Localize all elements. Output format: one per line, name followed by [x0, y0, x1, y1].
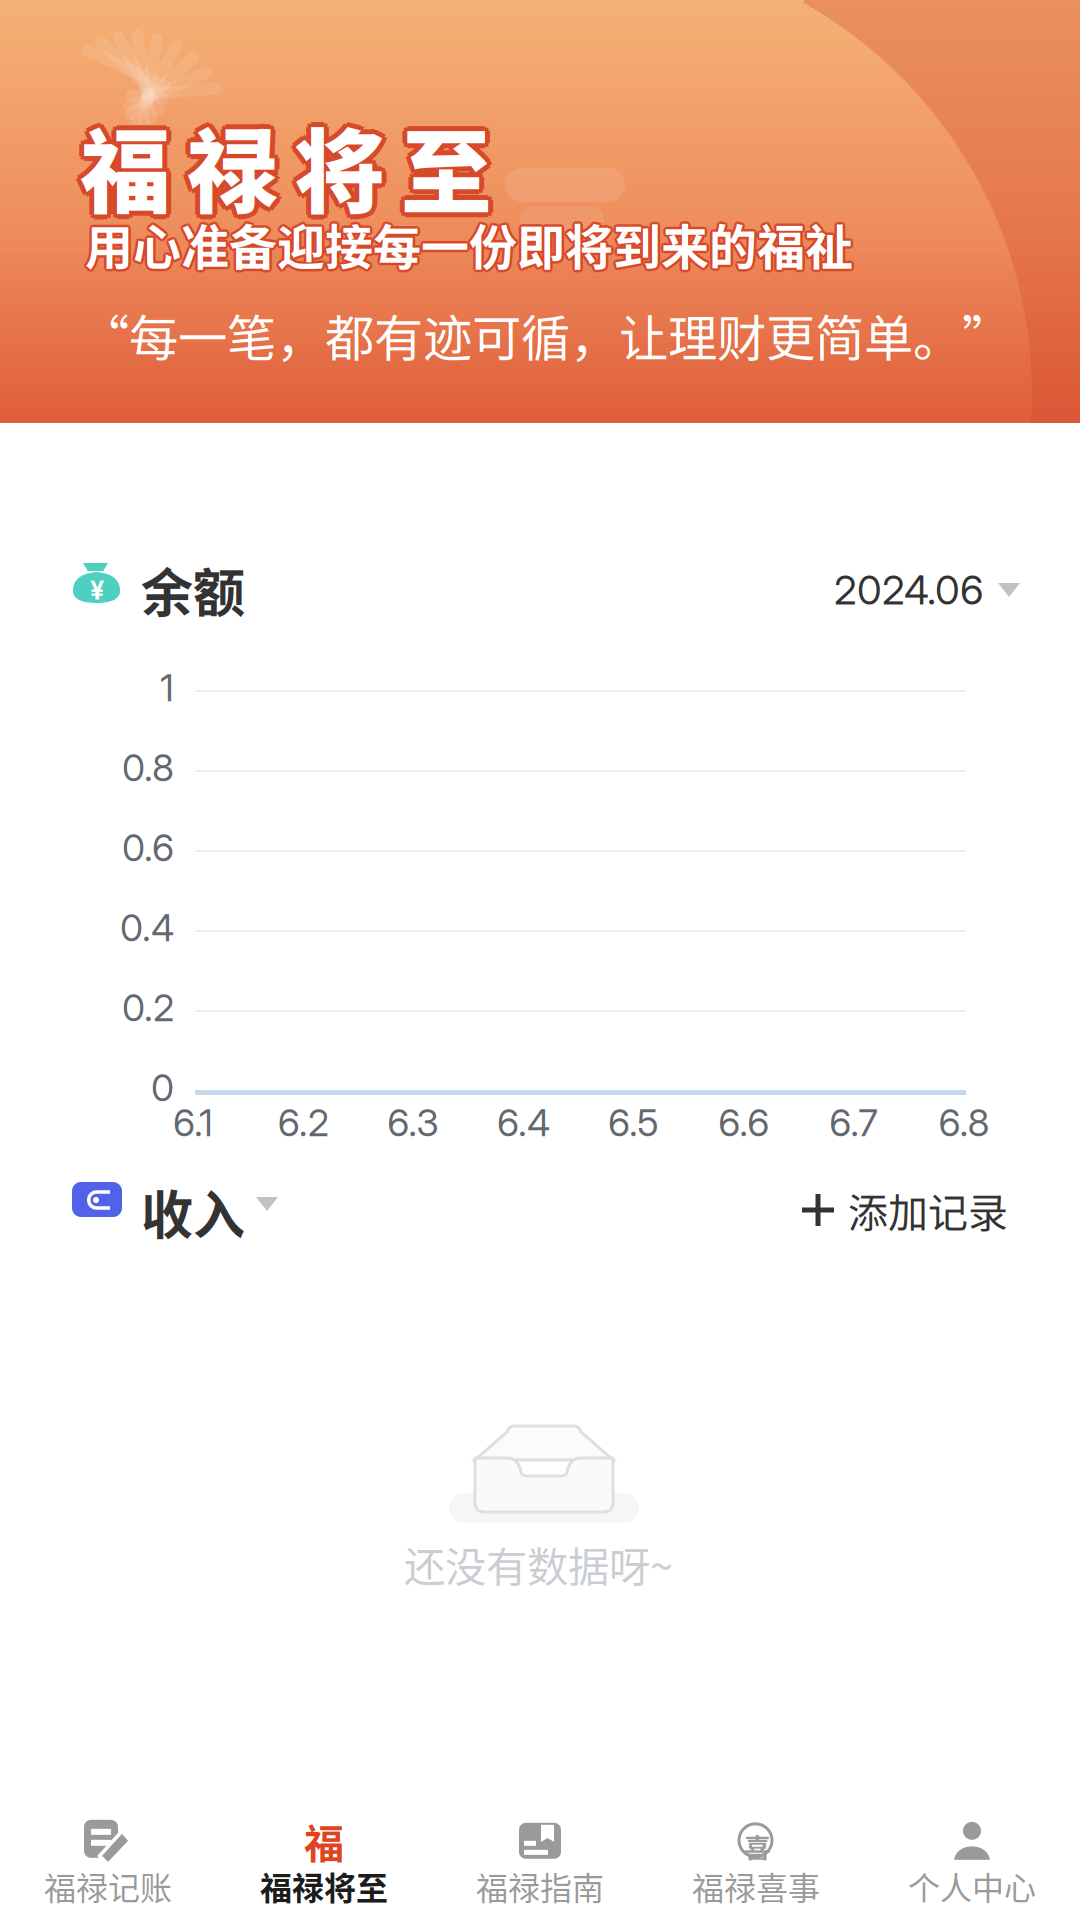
button[interactable]: 福: [216, 1802, 432, 1912]
staticText: 福禄喜事: [692, 1863, 820, 1909]
staticText: 福禄指南: [476, 1863, 604, 1909]
staticText: 福禄将至: [80, 100, 492, 231]
staticText: 用心准备迎接每一份即将到来的福祉: [87, 209, 855, 278]
staticText: 6.8: [938, 1100, 989, 1145]
staticText: 6.1: [173, 1100, 213, 1145]
staticText: 福禄记账: [44, 1863, 172, 1909]
staticText: 0: [151, 1065, 174, 1110]
staticText: 0.2: [122, 985, 174, 1030]
staticText: 用心准备迎接每一份即将到来的福祉: [87, 211, 855, 280]
staticText: 添加记录: [848, 1181, 1008, 1239]
staticText: 用心准备迎接每一份即将到来的福祉: [87, 207, 855, 277]
staticText: 福禄将至: [260, 1863, 388, 1909]
staticText: 还没有数据呀~: [404, 1534, 673, 1594]
staticText: 福禄将至: [85, 100, 497, 231]
staticText: 用心准备迎接每一份即将到来的福祉: [83, 211, 851, 280]
button[interactable]: 喜: [648, 1802, 864, 1912]
button[interactable]: 添加记录: [778, 1186, 1008, 1234]
button[interactable]: 个人中心: [864, 1802, 1080, 1912]
button[interactable]: 福禄指南: [432, 1802, 648, 1912]
staticText: 喜: [744, 1827, 771, 1865]
staticText: 福: [304, 1812, 344, 1870]
staticText: 6.2: [278, 1100, 329, 1145]
staticText: 用心准备迎接每一份即将到来的福祉: [85, 209, 853, 278]
staticText: 福禄将至: [83, 103, 495, 235]
staticText: 收入: [141, 1174, 245, 1249]
staticText: 福禄将至: [83, 96, 495, 228]
staticText: 福禄将至: [80, 105, 492, 236]
staticText: 余额: [141, 552, 245, 627]
staticText: 福禄将至: [76, 103, 488, 235]
staticText: 福禄将至: [76, 96, 488, 228]
staticText: 6.6: [718, 1100, 769, 1145]
staticText: 用心准备迎接每一份即将到来的福祉: [85, 211, 853, 281]
staticText: 用心准备迎接每一份即将到来的福祉: [83, 207, 851, 277]
button[interactable]: 2024.06: [800, 566, 1020, 614]
staticText: ¥: [90, 575, 104, 606]
staticText: 用心准备迎接每一份即将到来的福祉: [82, 209, 850, 278]
staticText: 0.8: [122, 745, 174, 790]
staticText: 6.4: [497, 1100, 550, 1145]
staticText: 1: [160, 665, 174, 710]
staticText: 0.6: [122, 825, 174, 870]
staticText: 0.4: [120, 905, 174, 950]
staticText: 用心准备迎接每一份即将到来的福祉: [85, 206, 853, 276]
staticText: “每一笔，都有迹可循，让理财更简单。”: [80, 299, 1011, 370]
staticText: 6.5: [608, 1100, 659, 1145]
staticText: 个人中心: [908, 1863, 1036, 1909]
staticText: 2024.06: [834, 566, 984, 614]
staticText: 6.7: [829, 1100, 878, 1145]
button[interactable]: 收入: [72, 1180, 288, 1236]
staticText: 福禄将至: [75, 100, 487, 231]
staticText: 福禄将至: [80, 95, 492, 226]
staticText: 6.3: [387, 1100, 439, 1145]
button[interactable]: 福禄记账: [0, 1802, 216, 1912]
